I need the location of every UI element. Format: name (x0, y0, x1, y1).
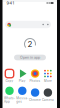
button[interactable]: Open in app (14, 55, 46, 60)
staticText: Play (19, 79, 26, 83)
staticText: Messages (16, 96, 28, 103)
button[interactable]: Chrome (29, 88, 41, 102)
button[interactable]: WhatsApp (3, 88, 16, 102)
button[interactable]: Copy (3, 69, 16, 83)
button[interactable]: Camera (42, 88, 54, 102)
staticText: Copy (5, 79, 13, 83)
button[interactable]: Photos (29, 69, 41, 83)
button[interactable]: Address bar (5, 21, 51, 28)
staticText: More (44, 79, 52, 83)
staticText: 2 (27, 39, 32, 49)
staticText: 9:41 (6, 1, 14, 5)
staticText: Camera (42, 98, 54, 102)
staticText: WhatsApp (4, 96, 15, 103)
button[interactable]: Messages (16, 88, 29, 102)
staticText: Open in app (20, 55, 40, 60)
button[interactable]: Play (16, 69, 29, 83)
staticText: Photos (30, 79, 41, 83)
button[interactable]: More (42, 69, 54, 83)
staticText: Chrome (29, 98, 41, 102)
